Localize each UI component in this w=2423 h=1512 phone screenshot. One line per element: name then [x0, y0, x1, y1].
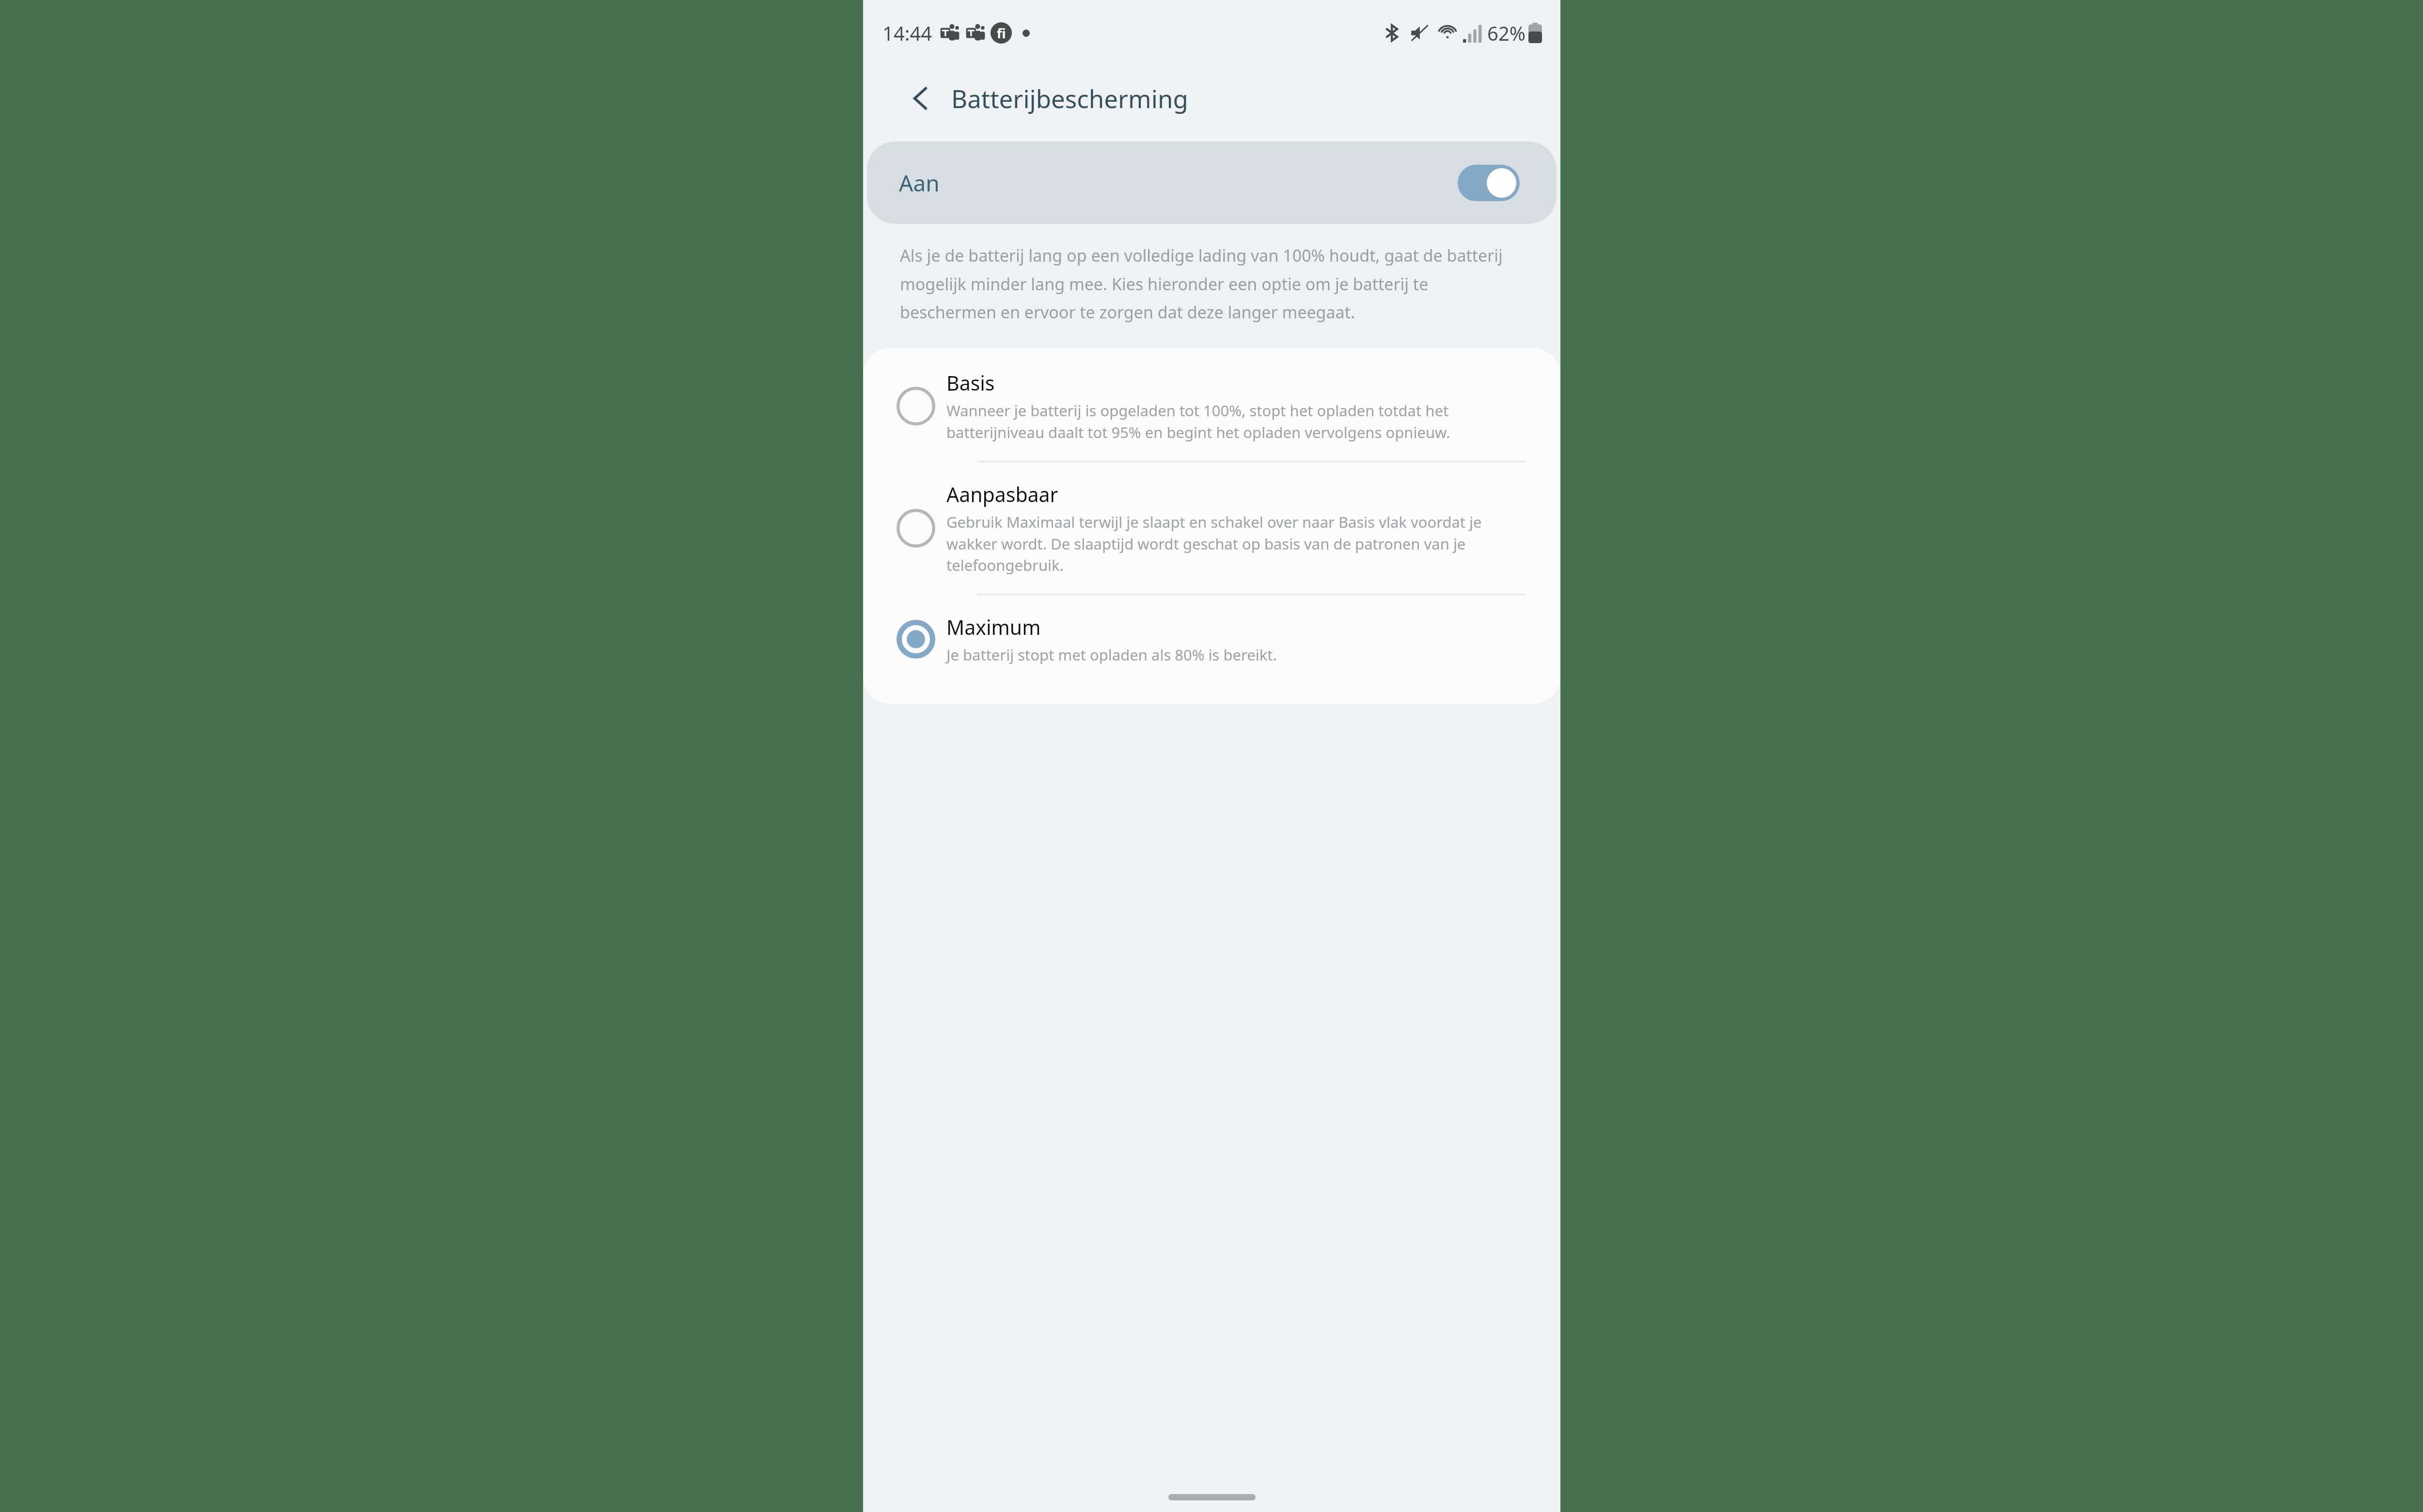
staticText: Aan [899, 168, 940, 198]
staticText: Als je de batterij lang op een volledige… [900, 244, 1528, 323]
staticText: Gebruik Maximaal terwijl je slaapt en sc… [946, 512, 1528, 575]
button[interactable]: Aan [867, 142, 1557, 224]
button[interactable]: Aanpasbaar [863, 462, 1560, 594]
staticText: 62% [1487, 20, 1526, 46]
button[interactable]: Terug [902, 79, 940, 117]
staticText: 14:44 [882, 20, 932, 46]
button[interactable]: Basis [863, 348, 1560, 461]
staticText: Basis [946, 369, 995, 396]
staticText: Batterijbescherming [951, 81, 1188, 115]
staticText: Je batterij stopt met opladen als 80% is… [946, 645, 1277, 665]
staticText: Aanpasbaar [946, 481, 1058, 508]
staticText: Wanneer je batterij is opgeladen tot 100… [946, 400, 1528, 442]
button[interactable]: Maximum [863, 595, 1560, 704]
staticText: fi [997, 24, 1006, 42]
staticText: Maximum [946, 614, 1041, 641]
